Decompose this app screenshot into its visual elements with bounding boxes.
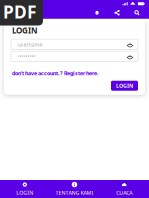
- button[interactable]: LOGIN: [0, 180, 50, 198]
- button[interactable]: Search: [127, 6, 147, 19]
- staticText: CUACA: [116, 189, 132, 196]
- staticText: LOGIN: [16, 189, 33, 196]
- staticText: LOGIN: [116, 82, 133, 89]
- staticText: don't have account. ? Register here.: [12, 70, 98, 77]
- staticText: LOGIN: [12, 25, 38, 36]
- staticText: PDF: [3, 0, 37, 23]
- button[interactable]: LOGIN: [111, 81, 138, 91]
- staticText: username: [17, 41, 42, 48]
- button[interactable]: CUACA: [99, 180, 149, 198]
- staticText: •••••••••: [17, 53, 35, 60]
- staticText: MyApp: [10, 7, 32, 16]
- button[interactable]: don't have account. ? Register here.: [4, 62, 102, 77]
- staticText: TENTANG KAMI: [55, 189, 93, 196]
- button[interactable]: TENTANG KAMI: [50, 180, 99, 198]
- button[interactable]: Share: [107, 6, 127, 19]
- button[interactable]: Notifications: [87, 6, 107, 19]
